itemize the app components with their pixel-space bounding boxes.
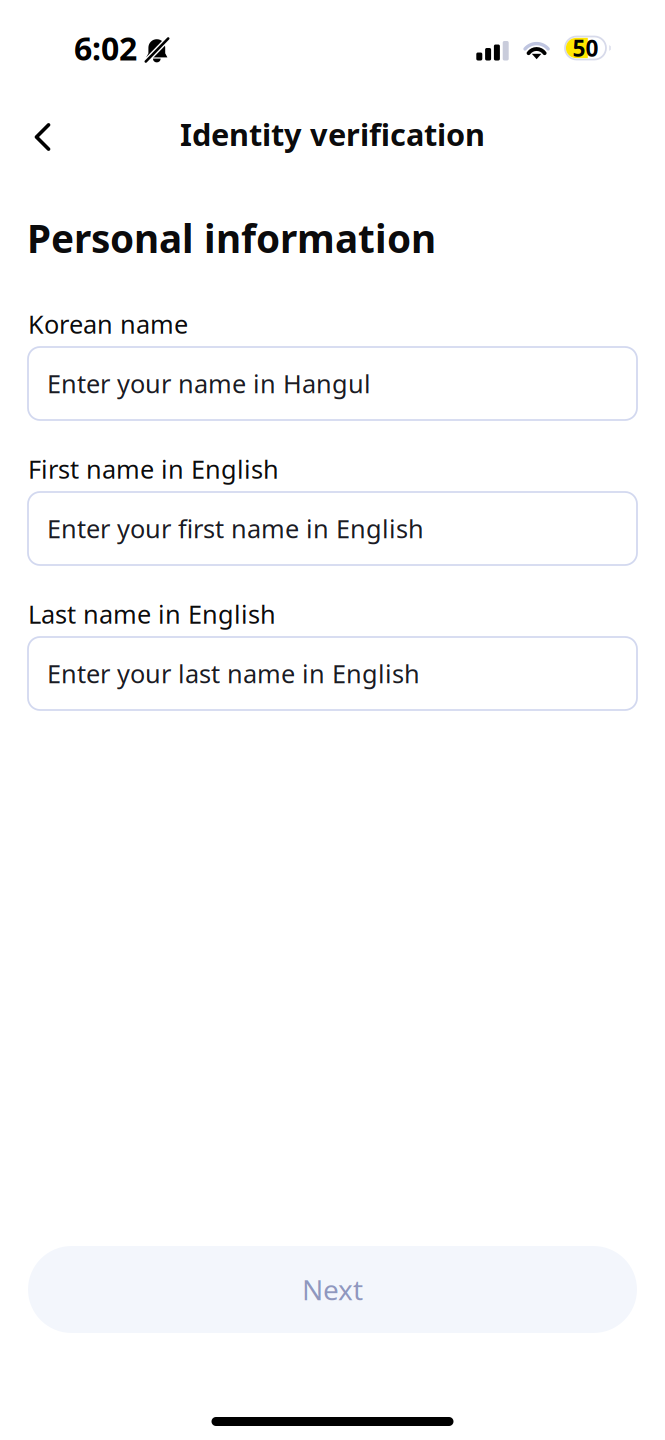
staticText: Personal information [27, 212, 436, 264]
staticText: Last name in English [28, 597, 276, 631]
staticText: Identity verification [180, 114, 485, 154]
staticText: First name in English [28, 452, 279, 486]
button[interactable]: Enter your last name in English [28, 637, 637, 710]
staticText: Enter your first name in English [47, 512, 424, 545]
staticText: Next [302, 1271, 363, 1308]
staticText: 50 [572, 33, 598, 63]
button[interactable]: Enter your first name in English [28, 492, 637, 565]
staticText: 6:02 [74, 27, 137, 69]
staticText: Enter your last name in English [47, 657, 420, 690]
button[interactable]: Next [28, 1246, 637, 1333]
button[interactable]: Back [13, 106, 69, 162]
staticText: Enter your name in Hangul [47, 367, 371, 400]
staticText: Korean name [28, 307, 188, 341]
button[interactable]: Enter your name in Hangul [28, 347, 637, 420]
